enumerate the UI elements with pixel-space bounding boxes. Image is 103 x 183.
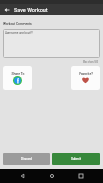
staticText: Max chars 500: [83, 61, 99, 64]
staticText: Save Workout: [14, 6, 48, 13]
button[interactable]: Recent apps: [74, 169, 88, 183]
staticText: Discard: [21, 157, 32, 161]
button[interactable]: Awesome workout!!!: [3, 29, 100, 58]
button[interactable]: Back: [15, 169, 29, 183]
staticText: Workout Comments: [3, 22, 32, 26]
button[interactable]: Navigate back: [0, 4, 14, 15]
button[interactable]: Discard: [3, 153, 50, 165]
staticText: Submit: [71, 157, 81, 161]
staticText: Favorite?: [79, 71, 93, 75]
staticText: Share To: [11, 71, 25, 75]
staticText: f: [17, 77, 19, 84]
button[interactable]: Home: [45, 169, 59, 183]
button[interactable]: Submit: [52, 153, 100, 165]
button[interactable]: Favorite?: [71, 66, 100, 90]
staticText: Awesome workout!!!: [5, 31, 34, 35]
button[interactable]: Share To: [3, 66, 32, 90]
